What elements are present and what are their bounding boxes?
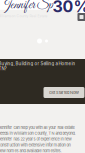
staticText: Jennifer can help you with all your real…	[0, 125, 74, 130]
button[interactable]: Menu	[77, 13, 85, 21]
staticText: TN?	[0, 66, 6, 71]
staticText: 30%	[52, 0, 85, 16]
staticText: Jennifer Sp	[0, 0, 52, 13]
staticText: needs in Williamson County, TN and beyon…	[0, 131, 75, 136]
staticText: Williamson County Real Estate	[0, 14, 47, 18]
staticText: Get Started Now!	[49, 90, 79, 95]
staticText: new homes and available homesites.	[0, 148, 61, 153]
button[interactable]: Get Started Now!	[43, 87, 84, 98]
staticText: construction with extensive information …	[0, 142, 70, 147]
staticText: Jennifer has 22 years of experience in n…	[0, 137, 71, 141]
staticText: Buying, Building or Selling a Home in	[0, 61, 75, 66]
